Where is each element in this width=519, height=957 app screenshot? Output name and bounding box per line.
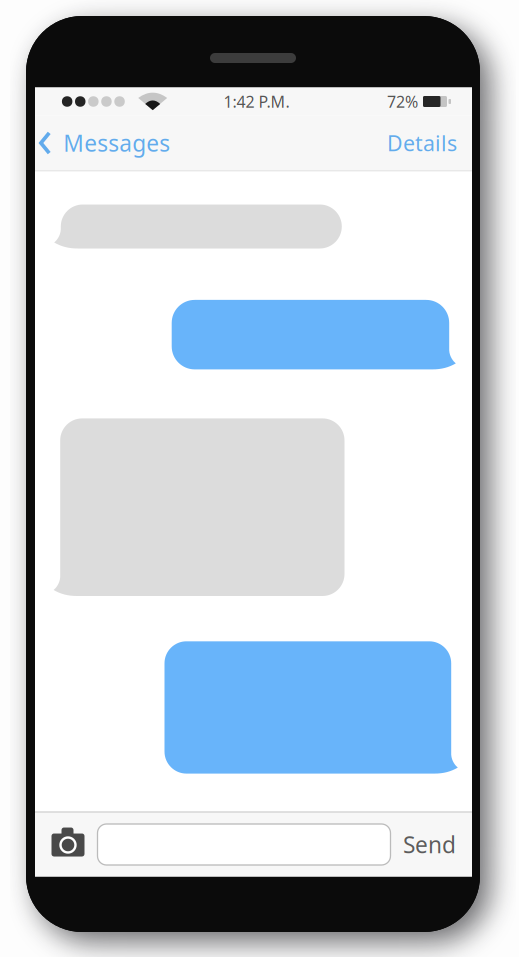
staticText: Send	[403, 829, 456, 859]
button[interactable]: Message field	[97, 824, 390, 865]
button[interactable]: Messages	[35, 115, 180, 170]
staticText: Messages	[63, 128, 170, 158]
button[interactable]: Details	[372, 115, 472, 170]
staticText: 72%	[387, 91, 418, 112]
staticText: 1:42 P.M.	[223, 91, 289, 112]
button[interactable]: Take photo	[51, 827, 84, 856]
staticText: Details	[387, 129, 457, 157]
button[interactable]: Send	[403, 829, 456, 859]
